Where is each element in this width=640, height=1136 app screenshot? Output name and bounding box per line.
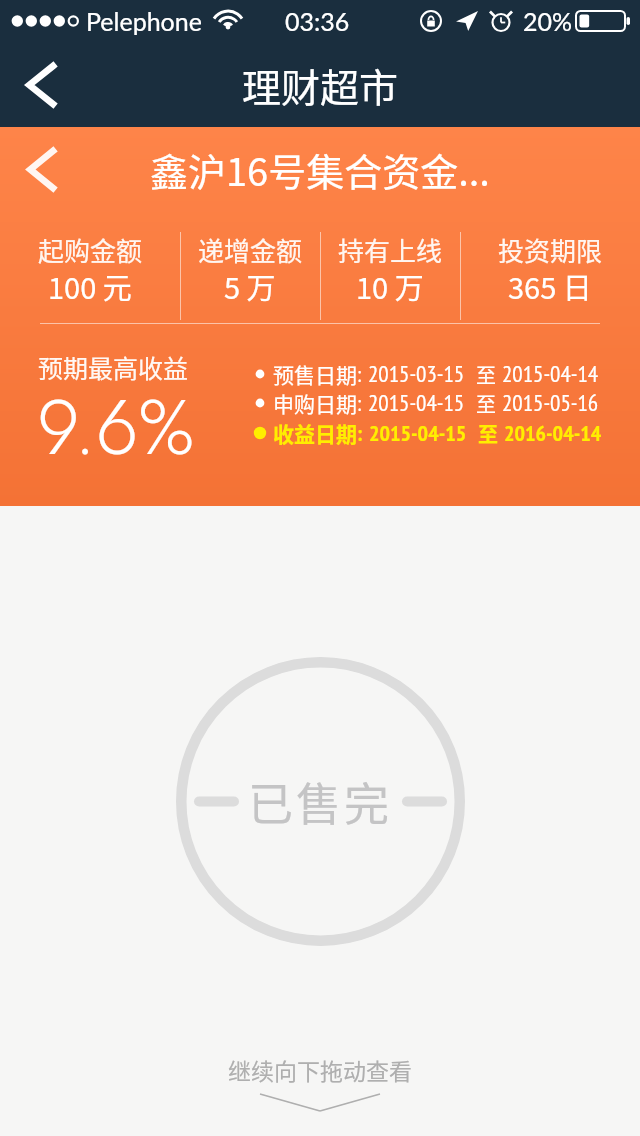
- staticText: 至: [478, 419, 498, 448]
- staticText: 继续向下拖动查看: [228, 1053, 412, 1086]
- staticText: 2015-04-14: [502, 359, 599, 389]
- staticText: 365 日: [508, 265, 592, 307]
- staticText: 起购金额: [38, 231, 143, 269]
- staticText: 至: [476, 360, 496, 389]
- staticText: 2015-05-16: [502, 388, 599, 418]
- staticText: :: [357, 390, 362, 417]
- staticText: 2015-04-15: [368, 388, 465, 418]
- staticText: :: [357, 361, 362, 388]
- staticText: 2015-04-15: [369, 419, 467, 447]
- staticText: :: [357, 420, 363, 447]
- staticText: 至: [476, 389, 496, 418]
- staticText: 10 万: [356, 265, 424, 307]
- staticText: 持有上线: [338, 231, 443, 269]
- staticText: 申购日期: [273, 388, 357, 418]
- staticText: 预售日期: [273, 359, 357, 389]
- staticText: 9.6%: [37, 373, 194, 483]
- staticText: 2016-04-14: [504, 419, 602, 447]
- staticText: 收益日期: [273, 418, 357, 448]
- staticText: 递增金额: [198, 231, 303, 269]
- button[interactable]: Back: [0, 127, 80, 212]
- staticText: 理财超市: [242, 57, 399, 113]
- staticText: 投资期限: [498, 231, 603, 269]
- staticText: 100 元: [48, 265, 132, 307]
- staticText: 鑫沪16号集合资金...: [150, 142, 490, 197]
- staticText: 已售完: [248, 769, 393, 834]
- button[interactable]: Back: [0, 42, 80, 127]
- staticText: 5 万: [224, 265, 276, 307]
- staticText: 预期最高收益: [38, 349, 189, 385]
- staticText: 2015-03-15: [368, 359, 465, 389]
- staticText: Pelephone: [86, 6, 202, 36]
- staticText: 20%: [523, 6, 573, 36]
- staticText: 03:36: [285, 6, 350, 36]
